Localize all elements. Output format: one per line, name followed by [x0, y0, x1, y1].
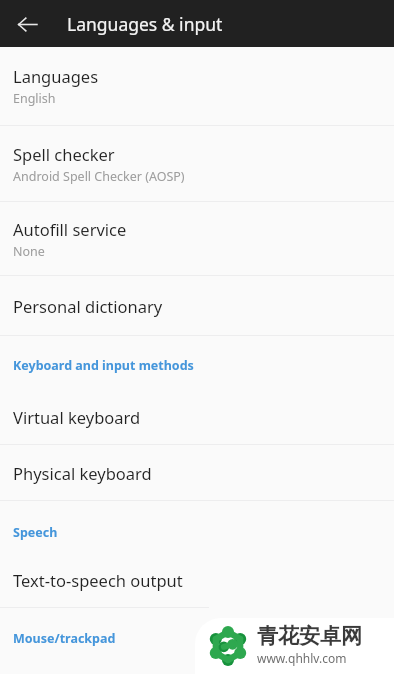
staticText: Virtual keyboard	[13, 406, 141, 428]
staticText: Physical keyboard	[13, 462, 152, 484]
staticText: Spell checker	[13, 143, 115, 165]
staticText: Personal dictionary	[13, 295, 163, 317]
staticText: Mouse/trackpad	[13, 630, 116, 647]
staticText: Languages & input	[67, 12, 223, 36]
staticText: English	[13, 90, 56, 107]
button[interactable]: Spell checker	[0, 126, 394, 201]
staticText: Keyboard and input methods	[13, 357, 194, 374]
staticText: www.qhhlv.com	[257, 650, 347, 666]
staticText: 青花安卓网	[257, 623, 362, 649]
staticText: None	[13, 243, 45, 260]
button[interactable]: Virtual keyboard	[0, 389, 394, 444]
staticText: Android Spell Checker (AOSP)	[13, 168, 185, 185]
button[interactable]: Back	[7, 4, 47, 44]
button[interactable]: Autofill service	[0, 202, 394, 275]
staticText: Autofill service	[13, 218, 127, 240]
button[interactable]: Languages	[0, 47, 394, 125]
staticText: Languages	[13, 65, 99, 87]
staticText: Text-to-speech output	[13, 569, 183, 591]
button[interactable]: Physical keyboard	[0, 445, 394, 500]
staticText: Speech	[13, 524, 58, 541]
button[interactable]: Text-to-speech output	[0, 553, 394, 607]
button[interactable]: Personal dictionary	[0, 276, 394, 335]
